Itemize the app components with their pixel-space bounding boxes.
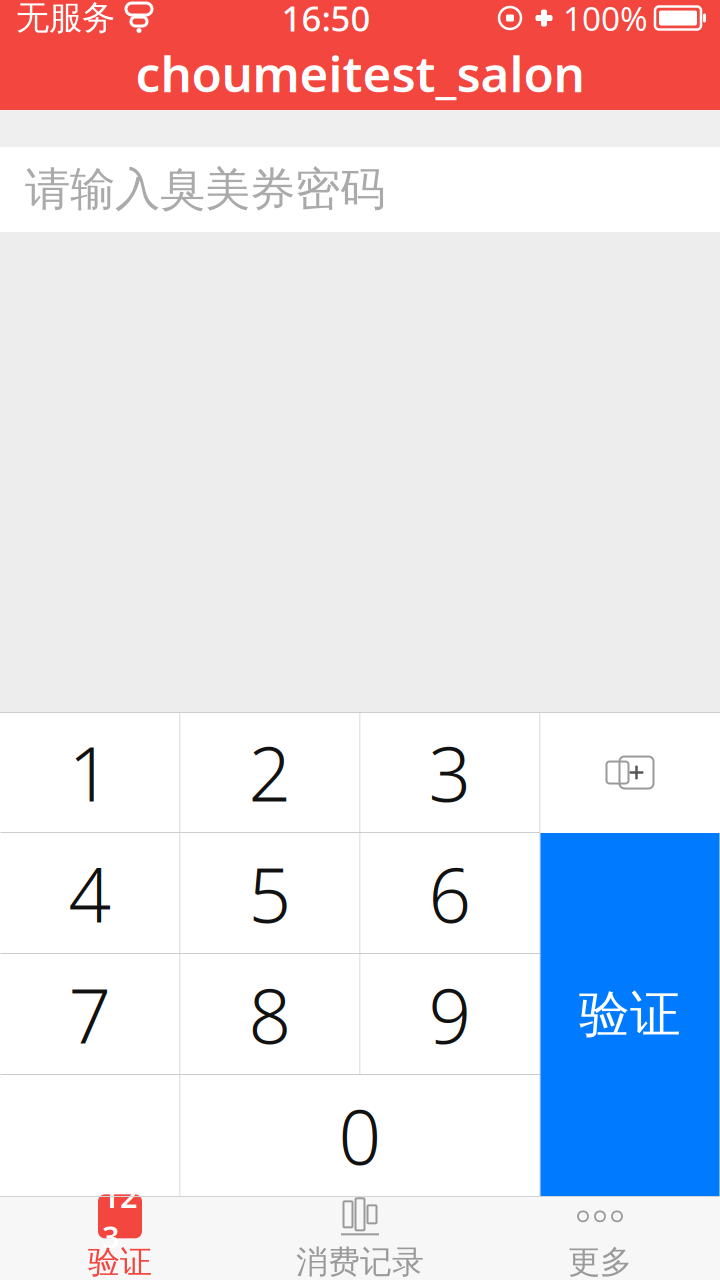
button[interactable]: 请输入臭美券密码 (0, 147, 720, 232)
button[interactable]: 9 (360, 954, 539, 1075)
button[interactable]: 验证 (540, 833, 719, 1196)
staticText: 16:50 (281, 0, 370, 41)
staticText: 4 (68, 844, 111, 943)
button[interactable]: 8 (180, 954, 359, 1075)
button[interactable]: 5 (180, 833, 359, 954)
staticText: 0 (338, 1086, 381, 1185)
staticText: 100% (563, 0, 648, 40)
staticText: 验证 (88, 1242, 152, 1280)
staticText: 2 (248, 723, 291, 822)
button[interactable]: 2 (180, 712, 359, 833)
button[interactable]: 7 (0, 954, 179, 1075)
button[interactable]: 3 (360, 712, 539, 833)
staticText: 1 (68, 723, 111, 822)
staticText: 更多 (568, 1242, 632, 1280)
button[interactable]: 消费记录 (240, 1196, 480, 1280)
staticText: 消费记录 (296, 1242, 424, 1280)
staticText: 123 (102, 1176, 138, 1257)
button[interactable]: 1 (0, 712, 179, 833)
staticText: 8 (248, 965, 291, 1064)
staticText: 无服务 (16, 0, 115, 38)
button[interactable]: 123 (0, 1196, 240, 1280)
staticText: 7 (68, 965, 111, 1064)
staticText: 9 (428, 965, 471, 1064)
staticText: choumeitest_salon (135, 40, 584, 106)
button[interactable]: 更多 (480, 1196, 720, 1280)
staticText: 验证 (579, 983, 681, 1046)
staticText: 6 (428, 844, 471, 943)
staticText: 5 (248, 844, 291, 943)
button[interactable]: Delete (540, 712, 719, 833)
staticText: 3 (428, 723, 471, 822)
button[interactable]: Blank (0, 1075, 179, 1196)
button[interactable]: 4 (0, 833, 179, 954)
staticText: 请输入臭美券密码 (25, 162, 385, 217)
button[interactable]: 6 (360, 833, 539, 954)
button[interactable]: 0 (180, 1075, 539, 1196)
